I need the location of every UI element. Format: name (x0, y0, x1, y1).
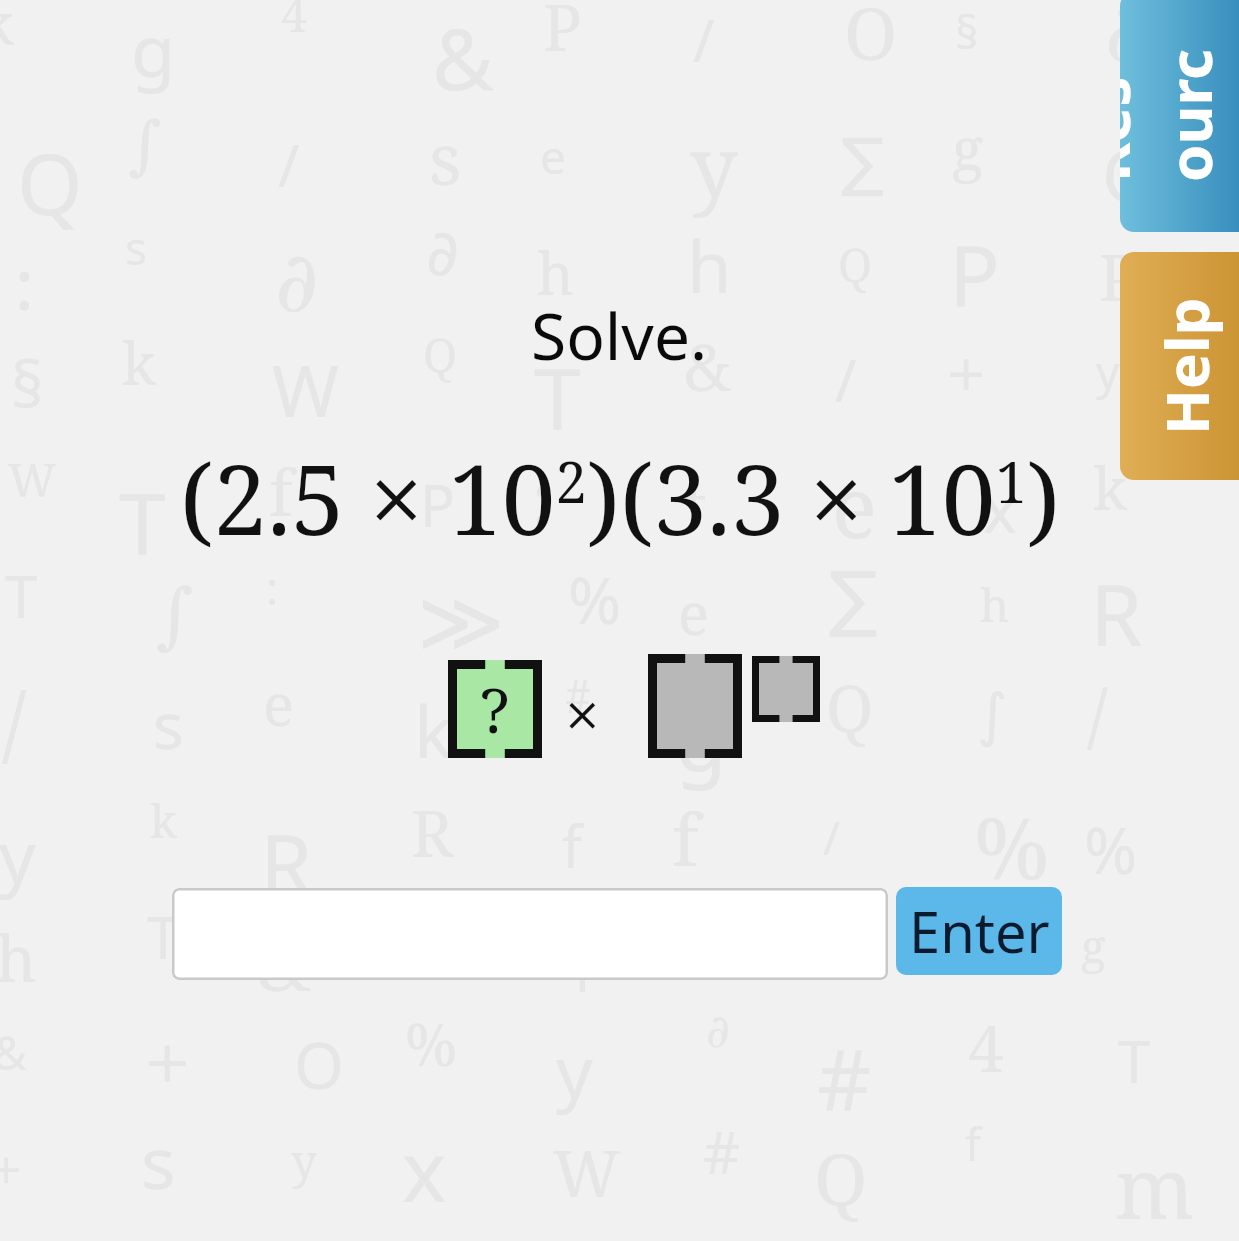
staticText: P (1099, 233, 1138, 320)
staticText: Resources (1120, 42, 1239, 182)
staticText: % (405, 1004, 457, 1083)
staticText: k (414, 681, 453, 779)
staticText: # (817, 1021, 872, 1135)
staticText: ∂ (275, 233, 319, 331)
staticText: y (1096, 340, 1120, 403)
staticText: % (568, 556, 622, 643)
staticText: h (687, 216, 732, 314)
staticText: ∂ (706, 1004, 730, 1058)
button[interactable] (172, 888, 888, 980)
staticText: f (562, 806, 582, 885)
button[interactable]: Blank (648, 654, 742, 758)
staticText: & (432, 0, 494, 114)
staticText: ? (480, 667, 510, 751)
staticText: W (8, 448, 57, 511)
button[interactable]: Help (1120, 252, 1239, 480)
staticText: § (955, 0, 979, 63)
staticText: g (675, 681, 727, 795)
staticText: Q (826, 664, 874, 751)
staticText: / (278, 125, 300, 204)
staticText: / (823, 806, 841, 869)
staticText: ∂ (1105, 0, 1149, 81)
staticText: ∑ (841, 125, 885, 200)
staticText: ∑ (829, 556, 878, 640)
staticText: R (260, 806, 313, 920)
button[interactable]: Blank (752, 656, 820, 722)
staticText: T (147, 897, 180, 976)
staticText: e (820, 914, 852, 993)
staticText: k (150, 789, 177, 852)
staticText: g (131, 0, 176, 98)
staticText: & (257, 914, 311, 1012)
staticText: 4 (281, 0, 307, 46)
staticText: k (122, 323, 156, 402)
staticText: + (559, 914, 606, 1028)
staticText: O (844, 0, 898, 81)
staticText: e (263, 664, 295, 743)
staticText: s (141, 1112, 176, 1210)
staticText: ∂ (971, 897, 1009, 981)
staticText: s (125, 216, 148, 279)
staticText: y (0, 806, 36, 904)
staticText: g (1081, 914, 1106, 977)
staticText: y (556, 1021, 593, 1119)
staticText: ≫ (417, 573, 505, 671)
staticText: P (543, 0, 582, 70)
staticText: ∫ (128, 108, 162, 183)
staticText: × (565, 672, 600, 756)
staticText: T (119, 465, 166, 579)
staticText: R (411, 789, 453, 876)
staticText: k (1093, 448, 1127, 527)
staticText: m (1115, 1129, 1195, 1241)
staticText: / (2, 664, 27, 778)
staticText: h (980, 573, 1010, 636)
staticText: / (835, 340, 857, 419)
staticText: s (429, 108, 462, 206)
staticText: y (291, 1129, 317, 1192)
staticText: R (1090, 556, 1143, 670)
staticText: T (534, 340, 581, 454)
staticText: f (269, 448, 293, 535)
staticText: % (974, 789, 1050, 903)
staticText: T (5, 556, 38, 635)
staticText: k (0, 0, 14, 62)
staticText: h (537, 233, 574, 312)
staticText: : (531, 448, 552, 546)
button[interactable]: Resources (1120, 0, 1239, 232)
staticText: # (565, 664, 591, 727)
staticText: & (0, 1021, 27, 1084)
staticText: + (681, 465, 708, 528)
button[interactable]: Enter (896, 887, 1062, 975)
staticText: Q (1102, 125, 1159, 223)
staticText: / (1087, 664, 1108, 762)
staticText: / (693, 0, 715, 79)
staticText: x (402, 1112, 447, 1226)
button[interactable]: Answer blank (448, 660, 542, 758)
staticText: W (272, 340, 339, 438)
staticText: Q (17, 125, 83, 239)
staticText: P (420, 465, 456, 544)
staticText: h (0, 914, 37, 1001)
staticText: Solve. (531, 292, 708, 379)
staticText: W (553, 1129, 621, 1216)
staticText: 4 (968, 1004, 1004, 1091)
staticText: e (540, 125, 566, 188)
staticText: Q (423, 323, 458, 386)
staticText: f (965, 1112, 981, 1175)
staticText: # (703, 1112, 741, 1191)
staticText: y (690, 108, 738, 222)
staticText: P (949, 216, 1000, 330)
staticText: f (672, 789, 699, 887)
staticText: T (1118, 1021, 1151, 1100)
staticText: s (153, 681, 184, 768)
staticText: O (294, 1021, 344, 1108)
staticText: Enter (909, 893, 1050, 969)
staticText: x (983, 465, 1017, 552)
